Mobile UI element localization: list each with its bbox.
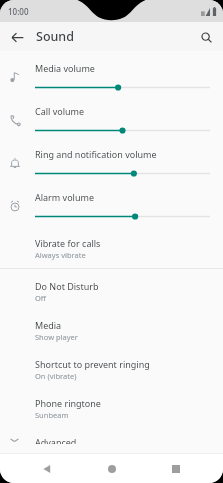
button[interactable]: Home: [101, 458, 123, 480]
staticText: 10:00: [8, 6, 29, 17]
staticText: Show player: [35, 332, 78, 342]
staticText: Vibrate for calls: [35, 237, 101, 249]
button[interactable]: Call volume: [0, 98, 223, 141]
button[interactable]: Search: [195, 26, 217, 48]
button[interactable]: Media: [0, 311, 223, 350]
button[interactable]: Alarm volume: [0, 184, 223, 227]
staticText: On (vibrate): [35, 371, 77, 381]
staticText: Sunbeam: [35, 410, 69, 420]
button[interactable]: Shortcut to prevent ringing: [0, 350, 223, 389]
staticText: Always vibrate: [35, 250, 86, 260]
staticText: Off: [35, 293, 47, 303]
button[interactable]: Vibrate for calls: [0, 227, 223, 268]
staticText: Phone ringtone: [35, 397, 101, 409]
staticText: Do Not Disturb: [35, 280, 99, 292]
staticText: Sound: [36, 28, 74, 45]
staticText: Ring and notification volume: [35, 148, 157, 160]
button[interactable]: Ring and notification volume: [0, 141, 223, 184]
staticText: Media: [35, 319, 62, 331]
staticText: Media volume: [35, 62, 95, 74]
staticText: Call volume: [35, 105, 85, 117]
button[interactable]: Advanced: [0, 428, 223, 453]
staticText: Shortcut to prevent ringing: [35, 358, 150, 370]
button[interactable]: Recent apps: [165, 458, 187, 480]
staticText: Alarm volume: [35, 191, 94, 203]
button[interactable]: Phone ringtone: [0, 389, 223, 428]
button[interactable]: Do Not Disturb: [0, 269, 223, 311]
button[interactable]: Back: [36, 458, 58, 480]
staticText: Advanced: [35, 436, 77, 444]
button[interactable]: Media volume: [0, 55, 223, 98]
button[interactable]: Back: [5, 25, 29, 49]
